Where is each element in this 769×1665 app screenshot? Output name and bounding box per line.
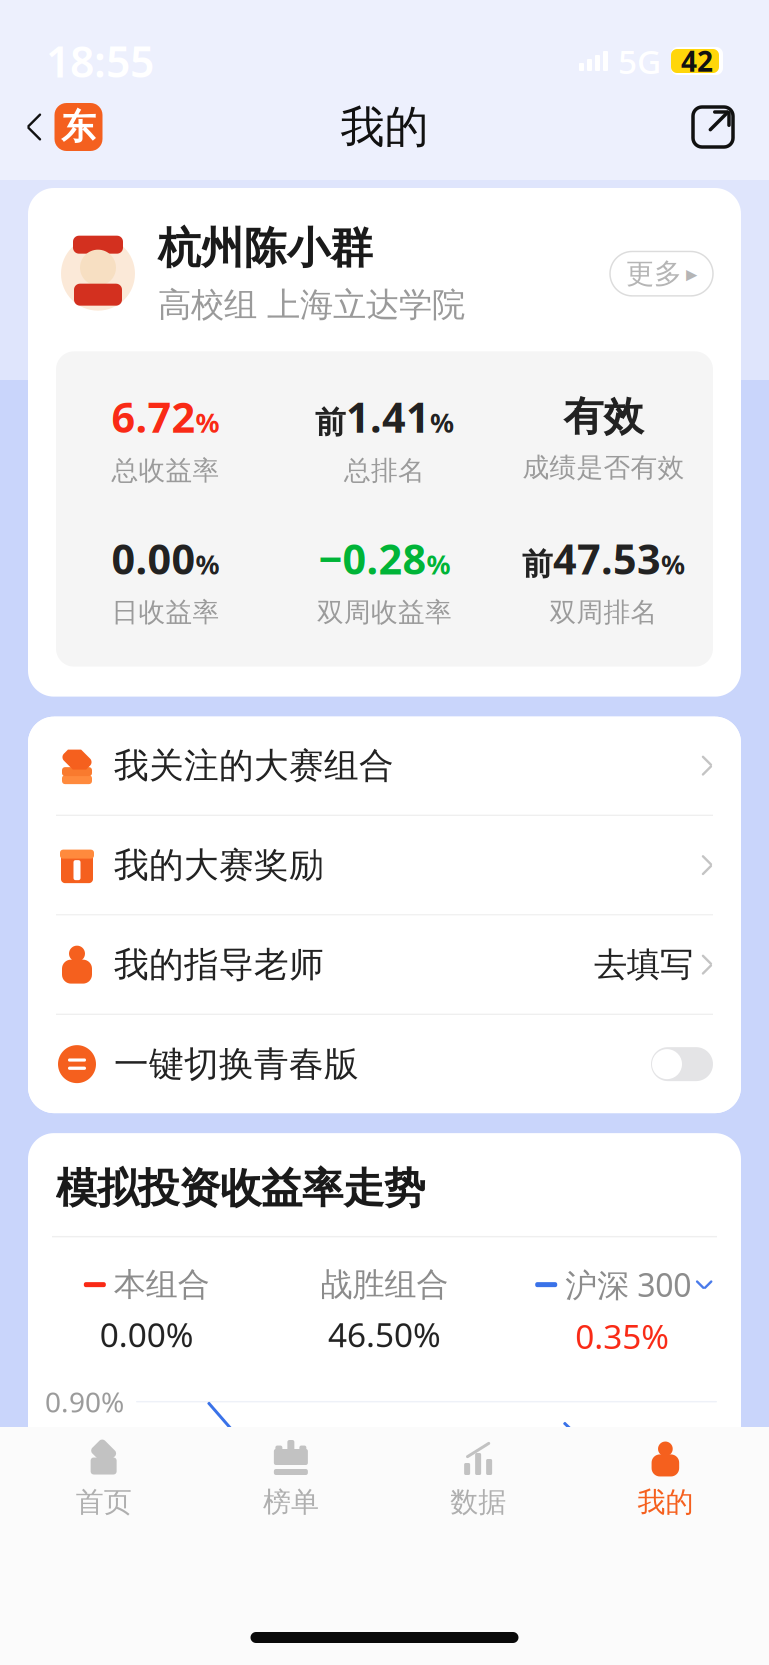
staticText: 我的指导老师 xyxy=(114,943,324,986)
staticText: 6.72 xyxy=(111,389,195,444)
button[interactable]: 我的指导老师 xyxy=(28,916,741,1014)
staticText: 我的 xyxy=(637,1485,693,1519)
staticText: 模拟投资收益率走势 xyxy=(56,1163,425,1214)
staticText: 0.00% xyxy=(45,1494,124,1531)
staticText: 0.30% xyxy=(45,1457,124,1494)
staticText: 双周排名 xyxy=(549,596,657,629)
staticText: 一键切换青春版 xyxy=(114,1043,359,1085)
button[interactable]: 我的大赛奖励 xyxy=(28,816,741,914)
staticText: 日收益率 xyxy=(111,596,219,629)
staticText: 0.60% xyxy=(45,1420,124,1457)
button[interactable]: 榜单 xyxy=(197,1427,384,1525)
button[interactable]: 更多 xyxy=(610,251,713,296)
button[interactable]: 一键切换青春版 xyxy=(28,1015,741,1113)
button[interactable]: 我关注的大赛组合 xyxy=(28,717,741,815)
staticText: −0.28 xyxy=(318,531,426,586)
staticText: % xyxy=(426,546,450,582)
staticText: 有效 xyxy=(563,392,643,441)
staticText: 总收益率 xyxy=(111,454,219,487)
staticText: 42 xyxy=(681,42,713,80)
button[interactable]: 沪深 300 xyxy=(503,1263,741,1358)
staticText: 沪深 300 xyxy=(565,1263,691,1306)
staticText: 本组合 xyxy=(114,1265,210,1304)
staticText: 我的大赛奖励 xyxy=(114,844,324,886)
staticText: 我的 xyxy=(340,100,428,154)
staticText: % xyxy=(195,405,219,440)
button[interactable]: 数据 xyxy=(384,1427,572,1525)
staticText: 47.53 xyxy=(553,531,661,586)
staticText: 杭州陈小群 xyxy=(158,222,373,274)
staticText: 高校组 上海立达学院 xyxy=(158,284,465,325)
staticText: 东 xyxy=(61,106,96,148)
button[interactable]: 首页 xyxy=(10,1427,197,1525)
staticText: 双周收益率 xyxy=(317,596,452,629)
staticText: 去填写 xyxy=(594,944,693,985)
staticText: % xyxy=(661,546,685,582)
staticText: 前 xyxy=(522,545,553,583)
staticText: 战胜组合 xyxy=(320,1265,448,1304)
staticText: 0.90% xyxy=(45,1383,124,1420)
staticText: 1.41 xyxy=(346,389,430,444)
staticText: 0.00 xyxy=(111,531,195,586)
staticText: % xyxy=(195,546,219,582)
staticText: 成绩是否有效 xyxy=(522,451,684,484)
staticText: 总排名 xyxy=(344,454,425,487)
staticText: 46.50% xyxy=(328,1312,441,1357)
staticText: 更多 xyxy=(626,256,682,291)
staticText: 5G xyxy=(618,39,661,83)
staticText: 18:55 xyxy=(46,33,154,89)
staticText: 0.35% xyxy=(575,1314,669,1358)
staticText: 数据 xyxy=(450,1485,506,1519)
staticText: 0.00% xyxy=(100,1312,194,1357)
staticText: 首页 xyxy=(76,1485,132,1519)
button[interactable]: 我的 xyxy=(572,1427,759,1525)
staticText: 我关注的大赛组合 xyxy=(114,744,394,787)
button[interactable]: 分享 xyxy=(687,101,769,153)
staticText: ▸ xyxy=(686,261,697,286)
staticText: 前 xyxy=(315,404,346,441)
staticText: 榜单 xyxy=(263,1485,319,1519)
staticText: % xyxy=(430,405,454,440)
button[interactable]: 返回 xyxy=(0,95,102,159)
